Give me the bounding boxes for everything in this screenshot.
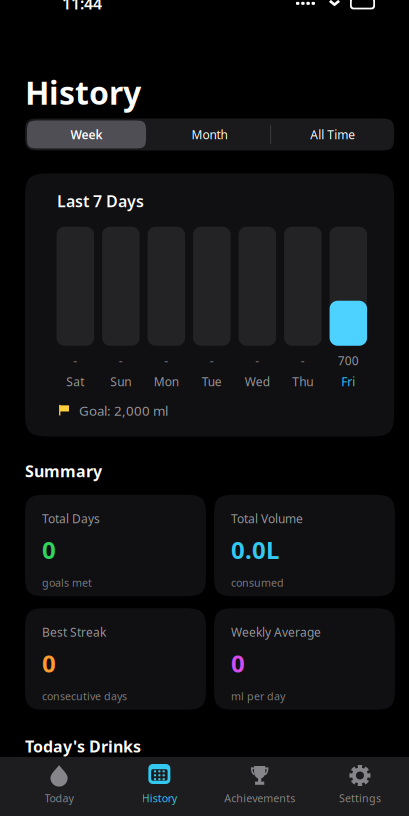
- staticText: -: [164, 353, 168, 369]
- button[interactable]: All Time: [271, 118, 394, 150]
- staticText: History: [142, 791, 177, 805]
- staticText: Mon: [154, 374, 179, 390]
- staticText: ml per day: [231, 689, 285, 703]
- staticText: 11:44: [62, 0, 102, 14]
- staticText: All Time: [310, 126, 355, 142]
- staticText: Today's Drinks: [25, 736, 141, 757]
- button[interactable]: Total Volume: [214, 495, 395, 596]
- staticText: Thu: [292, 374, 313, 390]
- staticText: Goal: 2,000 ml: [79, 402, 168, 419]
- button[interactable]: Weekly Average: [214, 608, 395, 710]
- staticText: Total Volume: [231, 511, 303, 527]
- staticText: -: [255, 353, 259, 369]
- staticText: Today: [45, 791, 74, 805]
- staticText: Tue: [202, 374, 222, 390]
- staticText: 0.0L: [231, 534, 279, 566]
- staticText: Sun: [110, 374, 131, 390]
- staticText: Wed: [245, 374, 270, 390]
- staticText: Week: [70, 126, 102, 142]
- button[interactable]: Settings: [310, 757, 409, 816]
- staticText: 0: [231, 647, 245, 679]
- staticText: 0: [42, 647, 56, 679]
- staticText: History: [25, 71, 141, 113]
- staticText: Sat: [66, 374, 84, 390]
- staticText: Fri: [341, 374, 355, 390]
- staticText: -: [210, 353, 214, 369]
- button[interactable]: Week: [25, 118, 148, 150]
- staticText: goals met: [42, 576, 92, 590]
- staticText: Total Days: [42, 511, 100, 527]
- staticText: Last 7 Days: [57, 190, 144, 212]
- staticText: Settings: [339, 791, 381, 805]
- staticText: Month: [192, 126, 228, 142]
- button[interactable]: Today: [9, 757, 109, 816]
- button[interactable]: Achievements: [209, 757, 310, 816]
- button[interactable]: History: [109, 757, 209, 816]
- staticText: -: [119, 353, 123, 369]
- staticText: Summary: [25, 460, 102, 482]
- staticText: Achievements: [224, 791, 295, 805]
- button[interactable]: Best Streak: [25, 608, 206, 710]
- staticText: -: [301, 353, 305, 369]
- staticText: Weekly Average: [231, 624, 321, 640]
- staticText: 0: [42, 534, 56, 566]
- button[interactable]: Month: [148, 118, 271, 150]
- staticText: consecutive days: [42, 689, 127, 703]
- staticText: consumed: [231, 576, 284, 590]
- staticText: -: [73, 353, 77, 369]
- staticText: 700: [338, 353, 359, 369]
- staticText: Best Streak: [42, 624, 106, 640]
- button[interactable]: Total Days: [25, 495, 206, 596]
